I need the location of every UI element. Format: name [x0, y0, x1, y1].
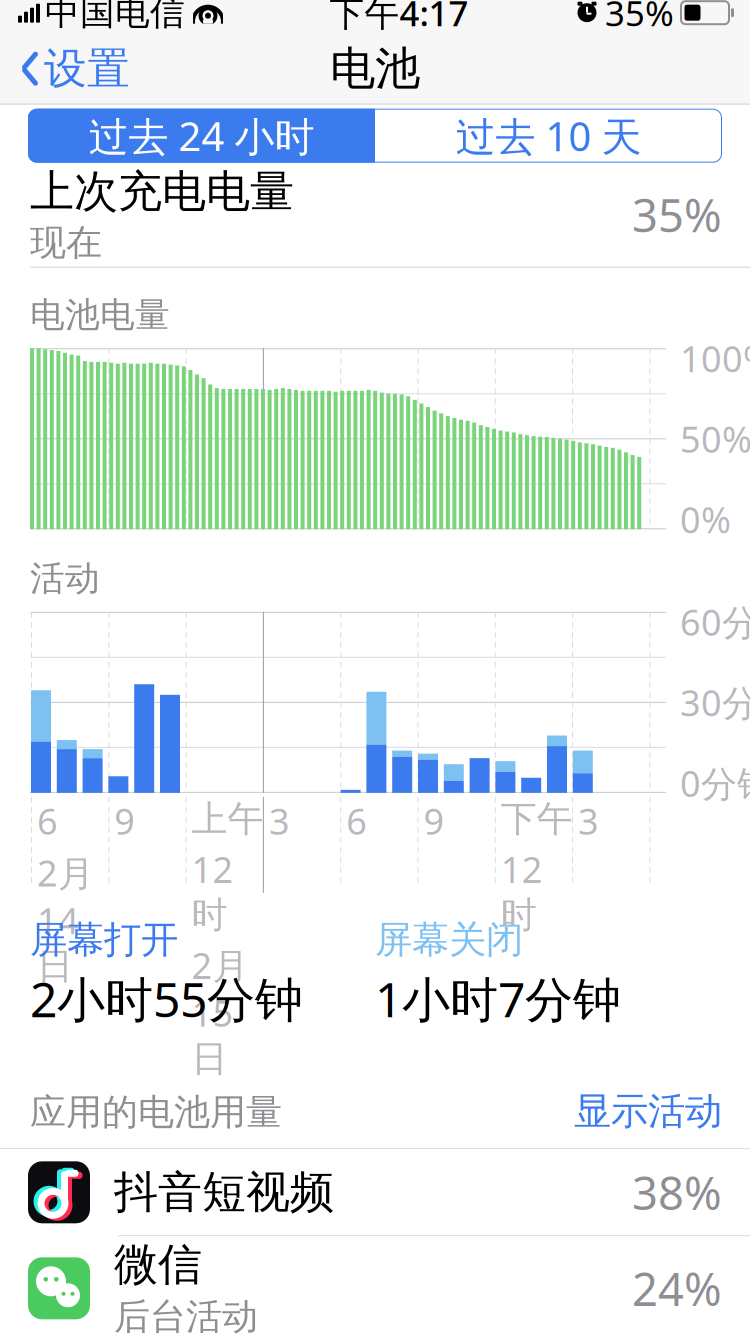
staticText: 现在: [30, 221, 102, 265]
staticText: 2小时55分钟: [30, 967, 303, 1030]
staticText: 1小时7分钟: [375, 967, 621, 1030]
staticText: 屏幕关闭: [375, 917, 523, 963]
staticText: 下午: [501, 797, 573, 841]
staticText: 38%: [632, 1162, 722, 1222]
staticText: 活动: [30, 557, 100, 600]
staticText: 屏幕打开: [30, 917, 178, 963]
staticText: 微信: [114, 1238, 202, 1292]
button[interactable]: 设置: [10, 36, 140, 101]
staticText: 2月14日: [37, 849, 94, 988]
staticText: 电池: [330, 41, 420, 97]
staticText: 30分钟: [680, 678, 750, 726]
staticText: 3: [578, 797, 599, 845]
button[interactable]: 微信: [0, 1236, 750, 1334]
staticText: 9: [114, 797, 135, 845]
staticText: 24%: [632, 1258, 722, 1318]
staticText: 6: [37, 797, 58, 845]
staticText: 0%: [680, 495, 731, 543]
staticText: 后台活动: [114, 1295, 258, 1334]
staticText: 2月15日: [192, 941, 249, 1081]
staticText: 中国电信: [45, 0, 185, 34]
staticText: 设置: [44, 42, 130, 95]
staticText: 上午: [192, 797, 264, 841]
button[interactable]: 显示活动: [574, 1088, 722, 1134]
staticText: 50%: [680, 415, 750, 463]
staticText: 0分钟: [680, 759, 750, 807]
staticText: 3: [269, 797, 290, 845]
staticText: 6: [346, 797, 367, 845]
staticText: 显示活动: [574, 1088, 722, 1134]
button[interactable]: 过去 24 小时: [28, 109, 375, 163]
staticText: 过去 10 天: [455, 109, 641, 162]
staticText: 100%: [680, 334, 750, 382]
button[interactable]: 抖音短视频: [0, 1149, 750, 1235]
staticText: 12时: [192, 845, 234, 937]
staticText: 60分钟: [680, 598, 750, 646]
staticText: 抖音短视频: [114, 1165, 334, 1219]
staticText: 9: [423, 797, 444, 845]
button[interactable]: 过去 10 天: [375, 109, 722, 163]
staticText: 35%: [632, 185, 722, 245]
staticText: 电池电量: [30, 294, 170, 336]
staticText: 上次充电电量: [30, 165, 294, 219]
staticText: 35%: [605, 0, 674, 36]
staticText: 12时: [501, 845, 543, 937]
staticText: 应用的电池用量: [30, 1090, 282, 1134]
staticText: 过去 24 小时: [88, 109, 314, 162]
staticText: 下午4:17: [329, 0, 468, 36]
